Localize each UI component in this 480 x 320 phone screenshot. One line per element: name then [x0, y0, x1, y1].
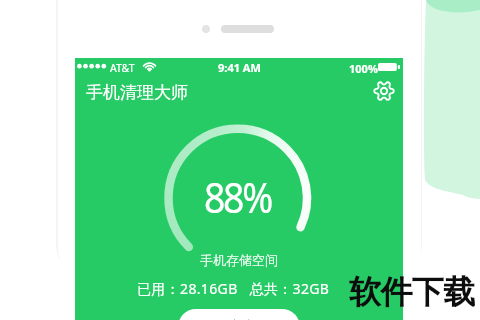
staticText: 手机清理大师 [86, 82, 188, 103]
staticText: 一键清理 [209, 318, 269, 320]
staticText: 9:41 AM [218, 60, 261, 75]
button[interactable]: 一键清理 [178, 309, 300, 320]
staticText: 软件下载 [349, 272, 475, 312]
staticText: 已用：28.16GB 总共：32GB [137, 279, 330, 298]
button[interactable]: Settings [369, 76, 399, 106]
staticText: 88% [204, 168, 272, 225]
staticText: 100% [349, 61, 378, 76]
staticText: AT&T [110, 61, 135, 75]
staticText: 手机存储空间 [200, 252, 278, 268]
